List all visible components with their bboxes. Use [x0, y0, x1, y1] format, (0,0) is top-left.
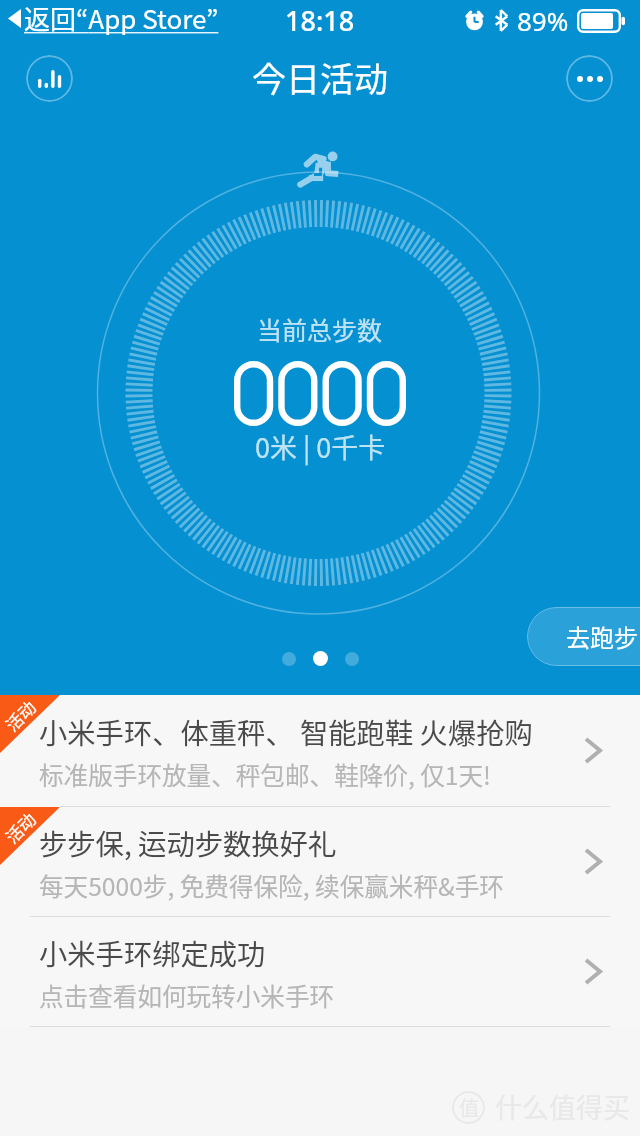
- staticText: 活动: [0, 695, 41, 736]
- staticText: 值: [459, 1093, 479, 1122]
- staticText: 返回“App Store”: [24, 0, 219, 37]
- staticText: 18:18: [285, 2, 355, 39]
- other: 0000 steps: [234, 361, 406, 426]
- button[interactable]: 返回“App Store”: [0, 0, 225, 37]
- button[interactable]: Statistics: [26, 55, 73, 102]
- staticText: 点击查看如何玩转小米手环: [39, 977, 335, 1013]
- staticText: 每天5000步, 免费得保险, 续保赢米秤&手环: [39, 867, 504, 903]
- staticText: 什么值得买: [495, 1087, 630, 1126]
- button[interactable]: 小米手环绑定成功: [0, 917, 640, 1026]
- staticText: 去跑步: [566, 619, 638, 654]
- staticText: 小米手环、体重秤、 智能跑鞋 火爆抢购: [39, 711, 533, 752]
- staticText: 89%: [517, 3, 569, 38]
- staticText: 0米 | 0千卡: [255, 427, 386, 466]
- staticText: 步步保, 运动步数换好礼: [39, 822, 337, 863]
- staticText: 今日活动: [252, 53, 388, 102]
- button[interactable]: 活动: [0, 807, 640, 916]
- button[interactable]: 去跑步: [527, 607, 640, 666]
- staticText: 标准版手环放量、秤包邮、鞋降价, 仅1天!: [39, 756, 492, 792]
- staticText: 活动: [0, 807, 41, 848]
- staticText: 小米手环绑定成功: [39, 932, 266, 973]
- button[interactable]: 活动: [0, 695, 640, 806]
- button[interactable]: More options: [566, 55, 613, 102]
- staticText: 当前总步数: [257, 311, 383, 347]
